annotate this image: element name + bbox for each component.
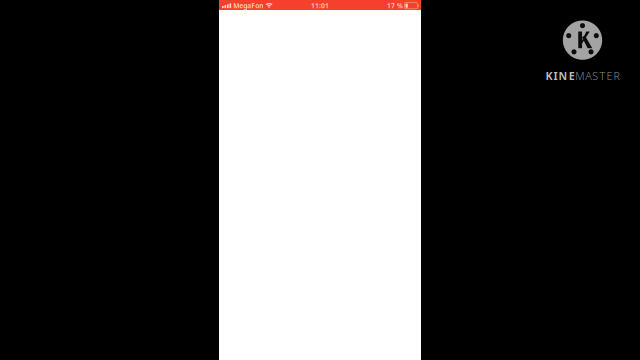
- staticText: MASTER: [575, 69, 619, 83]
- staticText: 17 %: [387, 1, 403, 10]
- staticText: KINE: [545, 69, 575, 83]
- staticText: 11:01: [311, 1, 329, 10]
- staticText: MegaFon: [233, 1, 263, 10]
